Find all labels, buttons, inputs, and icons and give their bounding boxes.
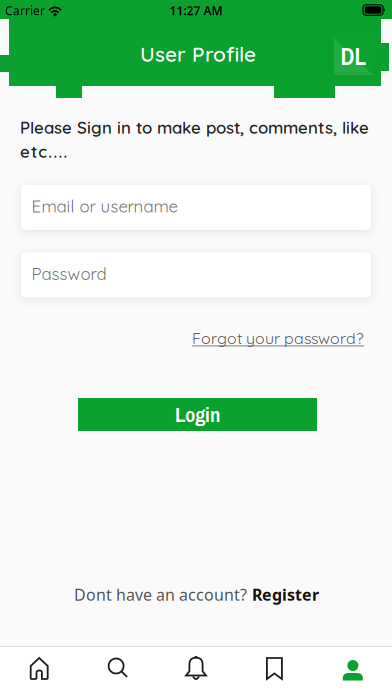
button[interactable]: Home	[0, 644, 78, 693]
staticText: etc....	[20, 141, 68, 162]
button[interactable]: Login	[78, 398, 317, 431]
staticText: Dont have an account?	[74, 584, 247, 605]
staticText: Login	[175, 400, 220, 428]
staticText: Carrier	[5, 2, 45, 18]
staticText: Please Sign in to make post, comments, l…	[20, 117, 369, 138]
button[interactable]: Bookmarks	[235, 644, 313, 693]
button[interactable]: Notifications	[157, 644, 235, 693]
staticText: DL	[340, 41, 366, 72]
button[interactable]: Search	[79, 644, 157, 693]
staticText: Email or username	[31, 196, 177, 217]
staticText: User Profile	[140, 41, 256, 67]
button[interactable]: Register	[252, 584, 319, 605]
button[interactable]: Profile	[314, 644, 392, 693]
staticText: 11:27 AM	[169, 2, 222, 18]
staticText: Register	[252, 584, 319, 605]
button[interactable]: Forgot your password?	[192, 328, 364, 348]
button[interactable]: DL logo	[334, 38, 373, 75]
staticText: Password	[31, 263, 106, 284]
staticText: Forgot your password?	[192, 328, 364, 348]
